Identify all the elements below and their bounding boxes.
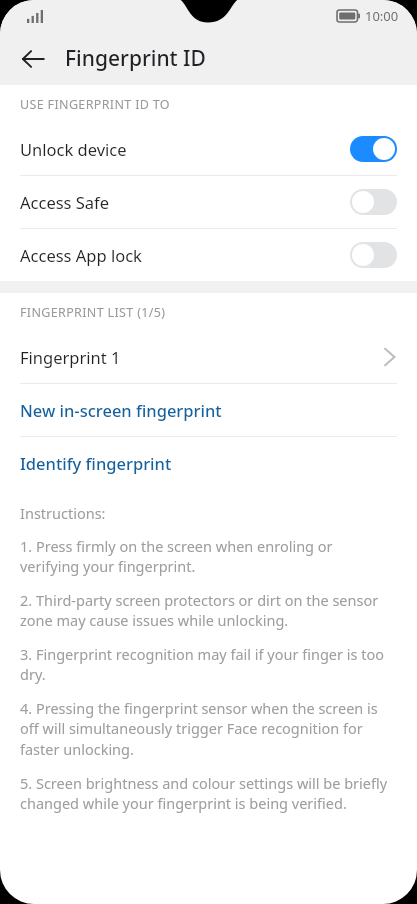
button[interactable]: Fingerprint 1 — [0, 331, 417, 383]
button[interactable]: Access App lock — [0, 229, 417, 281]
button[interactable]: Back — [9, 35, 57, 83]
staticText: 4. Pressing the fingerprint sensor when … — [20, 698, 393, 760]
staticText: Fingerprint ID — [65, 44, 206, 73]
button[interactable]: Unlock device — [0, 123, 417, 175]
staticText: FINGERPRINT LIST (1/5) — [20, 304, 166, 321]
staticText: 5. Screen brightness and colour settings… — [20, 773, 393, 814]
staticText: Access App lock — [20, 244, 350, 266]
staticText: Identify fingerprint — [20, 452, 172, 474]
staticText: USE FINGERPRINT ID TO — [20, 96, 170, 113]
staticText: 3. Fingerprint recognition may fail if y… — [20, 644, 393, 685]
staticText: 10:00 — [365, 7, 399, 25]
button[interactable]: New in-screen fingerprint — [0, 384, 417, 436]
staticText: Access Safe — [20, 191, 350, 213]
staticText: 1. Press firmly on the screen when enrol… — [20, 536, 393, 577]
staticText: Instructions: — [20, 503, 106, 523]
staticText: Unlock device — [20, 138, 350, 160]
staticText: 2. Third-party screen protectors or dirt… — [20, 590, 393, 631]
staticText: New in-screen fingerprint — [20, 399, 222, 421]
staticText: Fingerprint 1 — [20, 346, 383, 368]
button[interactable]: Access Safe — [0, 176, 417, 228]
button[interactable]: Identify fingerprint — [0, 437, 417, 489]
